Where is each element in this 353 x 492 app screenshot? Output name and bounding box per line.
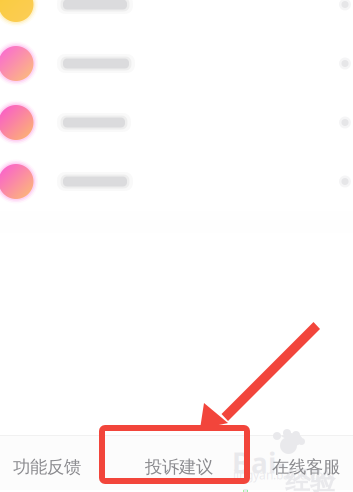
- button[interactable]: [0, 152, 353, 211]
- staticText: 功能反馈: [13, 456, 81, 478]
- button[interactable]: [0, 93, 353, 152]
- staticText: Baidu: [232, 444, 285, 492]
- button[interactable]: 投诉建议: [132, 440, 226, 492]
- staticText: 经验: [285, 466, 335, 492]
- staticText: jingyan.baidu.com: [233, 467, 334, 483]
- staticText: 在线客服: [272, 456, 340, 478]
- button[interactable]: 在线客服: [259, 440, 353, 492]
- button[interactable]: [0, 0, 353, 34]
- staticText: 投诉建议: [145, 456, 213, 478]
- button[interactable]: 功能反馈: [0, 440, 94, 492]
- button[interactable]: [0, 34, 353, 93]
